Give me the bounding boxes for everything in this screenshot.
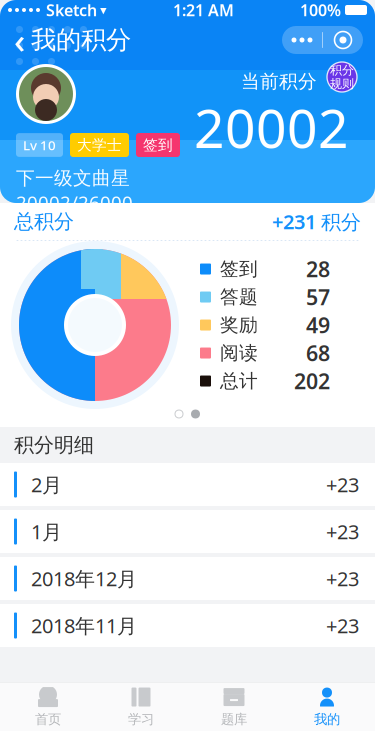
button[interactable]: ‹ [0,20,145,60]
staticText: 积分 [330,63,354,77]
staticText: 阅读 [220,341,258,364]
staticText: +23 [326,612,359,639]
staticText: Sketch [46,0,97,21]
button[interactable]: 我的 [280,683,373,731]
staticText: 大学士 [77,136,122,154]
staticText: 20002 [194,92,349,163]
staticText: +231 积分 [272,208,361,235]
staticText: 68 [306,339,330,367]
staticText: 题库 [221,711,247,727]
staticText: 签到 [220,257,258,280]
staticText: 当前积分 [241,70,317,93]
staticText: 奖励 [220,313,258,336]
button[interactable]: More options [282,26,322,54]
staticText: +23 [326,471,359,498]
staticText: ‹ [14,17,25,63]
staticText: 100% [300,0,341,21]
button[interactable]: 2月 [0,463,375,506]
button[interactable]: 2018年11月 [0,604,375,647]
staticText: +23 [326,518,359,545]
button[interactable]: 学习 [94,683,187,731]
staticText: 我的积分 [31,24,131,55]
button[interactable]: 题库 [187,683,280,731]
staticText: 签到 [143,136,173,154]
button[interactable]: 积分规则 [325,60,359,94]
button[interactable]: 2018年12月 [0,557,375,600]
staticText: 首页 [35,711,61,727]
staticText: 规则 [330,76,354,91]
staticText: 1月 [31,518,62,545]
staticText: 答题 [220,285,258,308]
staticText: +23 [326,565,359,592]
staticText: Lv 10 [23,136,56,154]
staticText: 2018年11月 [31,612,137,639]
staticText: 总积分 [14,209,74,234]
staticText: 积分明细 [14,433,94,457]
staticText: 202 [294,367,330,395]
staticText: 1:21 AM [173,0,234,21]
staticText: 总计 [220,369,258,392]
button[interactable]: Target [323,26,363,54]
staticText: 学习 [128,711,154,727]
staticText: 我的 [314,711,340,727]
button[interactable]: 首页 [1,683,94,731]
staticText: ▾ [100,2,107,17]
staticText: 57 [306,283,330,311]
staticText: 下一级文曲星 20002/26000 [16,165,135,215]
staticText: 2018年12月 [31,565,137,592]
staticText: 2月 [31,471,62,498]
staticText: 49 [306,311,330,339]
button[interactable]: 1月 [0,510,375,553]
staticText: 28 [306,255,330,283]
